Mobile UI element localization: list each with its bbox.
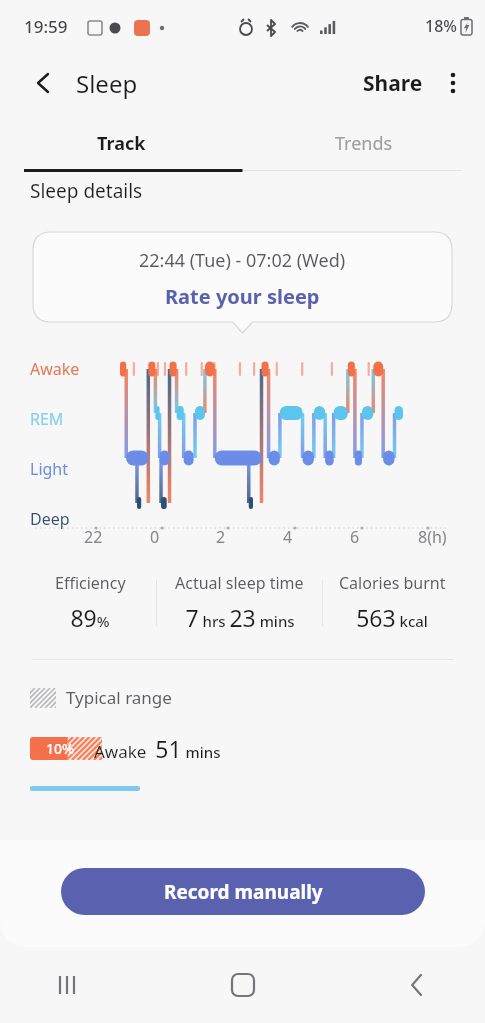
staticText: 563 kcal: [356, 602, 428, 633]
staticText: Typical range: [66, 686, 172, 709]
staticText: Sleep: [76, 67, 138, 100]
button[interactable]: Recents: [40, 957, 96, 1013]
staticText: 0: [150, 526, 160, 548]
button[interactable]: More options: [433, 63, 473, 103]
staticText: 2: [216, 526, 226, 548]
staticText: 89%: [70, 602, 110, 633]
staticText: 10%: [46, 739, 74, 758]
staticText: Rate your sleep: [165, 283, 320, 310]
button[interactable]: Rate your sleep: [157, 281, 328, 312]
staticText: Light: [30, 458, 69, 480]
staticText: 19:59: [24, 15, 68, 38]
button[interactable]: Share: [357, 61, 429, 106]
button[interactable]: Back: [24, 64, 62, 102]
staticText: 8(h): [418, 526, 447, 548]
staticText: Awake 51 mins: [94, 733, 221, 764]
staticText: Track: [97, 131, 146, 156]
staticText: Calories burnt: [339, 572, 446, 594]
staticText: 22:44 (Tue) - 07:02 (Wed): [139, 248, 346, 273]
button[interactable]: Record manually: [61, 868, 425, 915]
staticText: 7 hrs 23 mins: [185, 602, 295, 633]
staticText: Efficiency: [55, 572, 126, 594]
button[interactable]: Track: [0, 114, 242, 172]
button[interactable]: Home: [215, 957, 271, 1013]
staticText: 6: [350, 526, 360, 548]
staticText: Sleep details: [30, 178, 143, 204]
button[interactable]: Back: [389, 957, 445, 1013]
staticText: Deep: [30, 508, 70, 530]
staticText: Trends: [335, 131, 393, 156]
staticText: Record manually: [164, 879, 323, 905]
staticText: Actual sleep time: [175, 572, 304, 594]
staticText: 18%: [425, 15, 457, 37]
button[interactable]: Trends: [242, 114, 485, 172]
staticText: 4: [283, 526, 293, 548]
staticText: 22: [84, 526, 103, 548]
staticText: REM: [30, 408, 64, 430]
staticText: Awake: [30, 358, 80, 380]
staticText: Share: [363, 69, 423, 98]
